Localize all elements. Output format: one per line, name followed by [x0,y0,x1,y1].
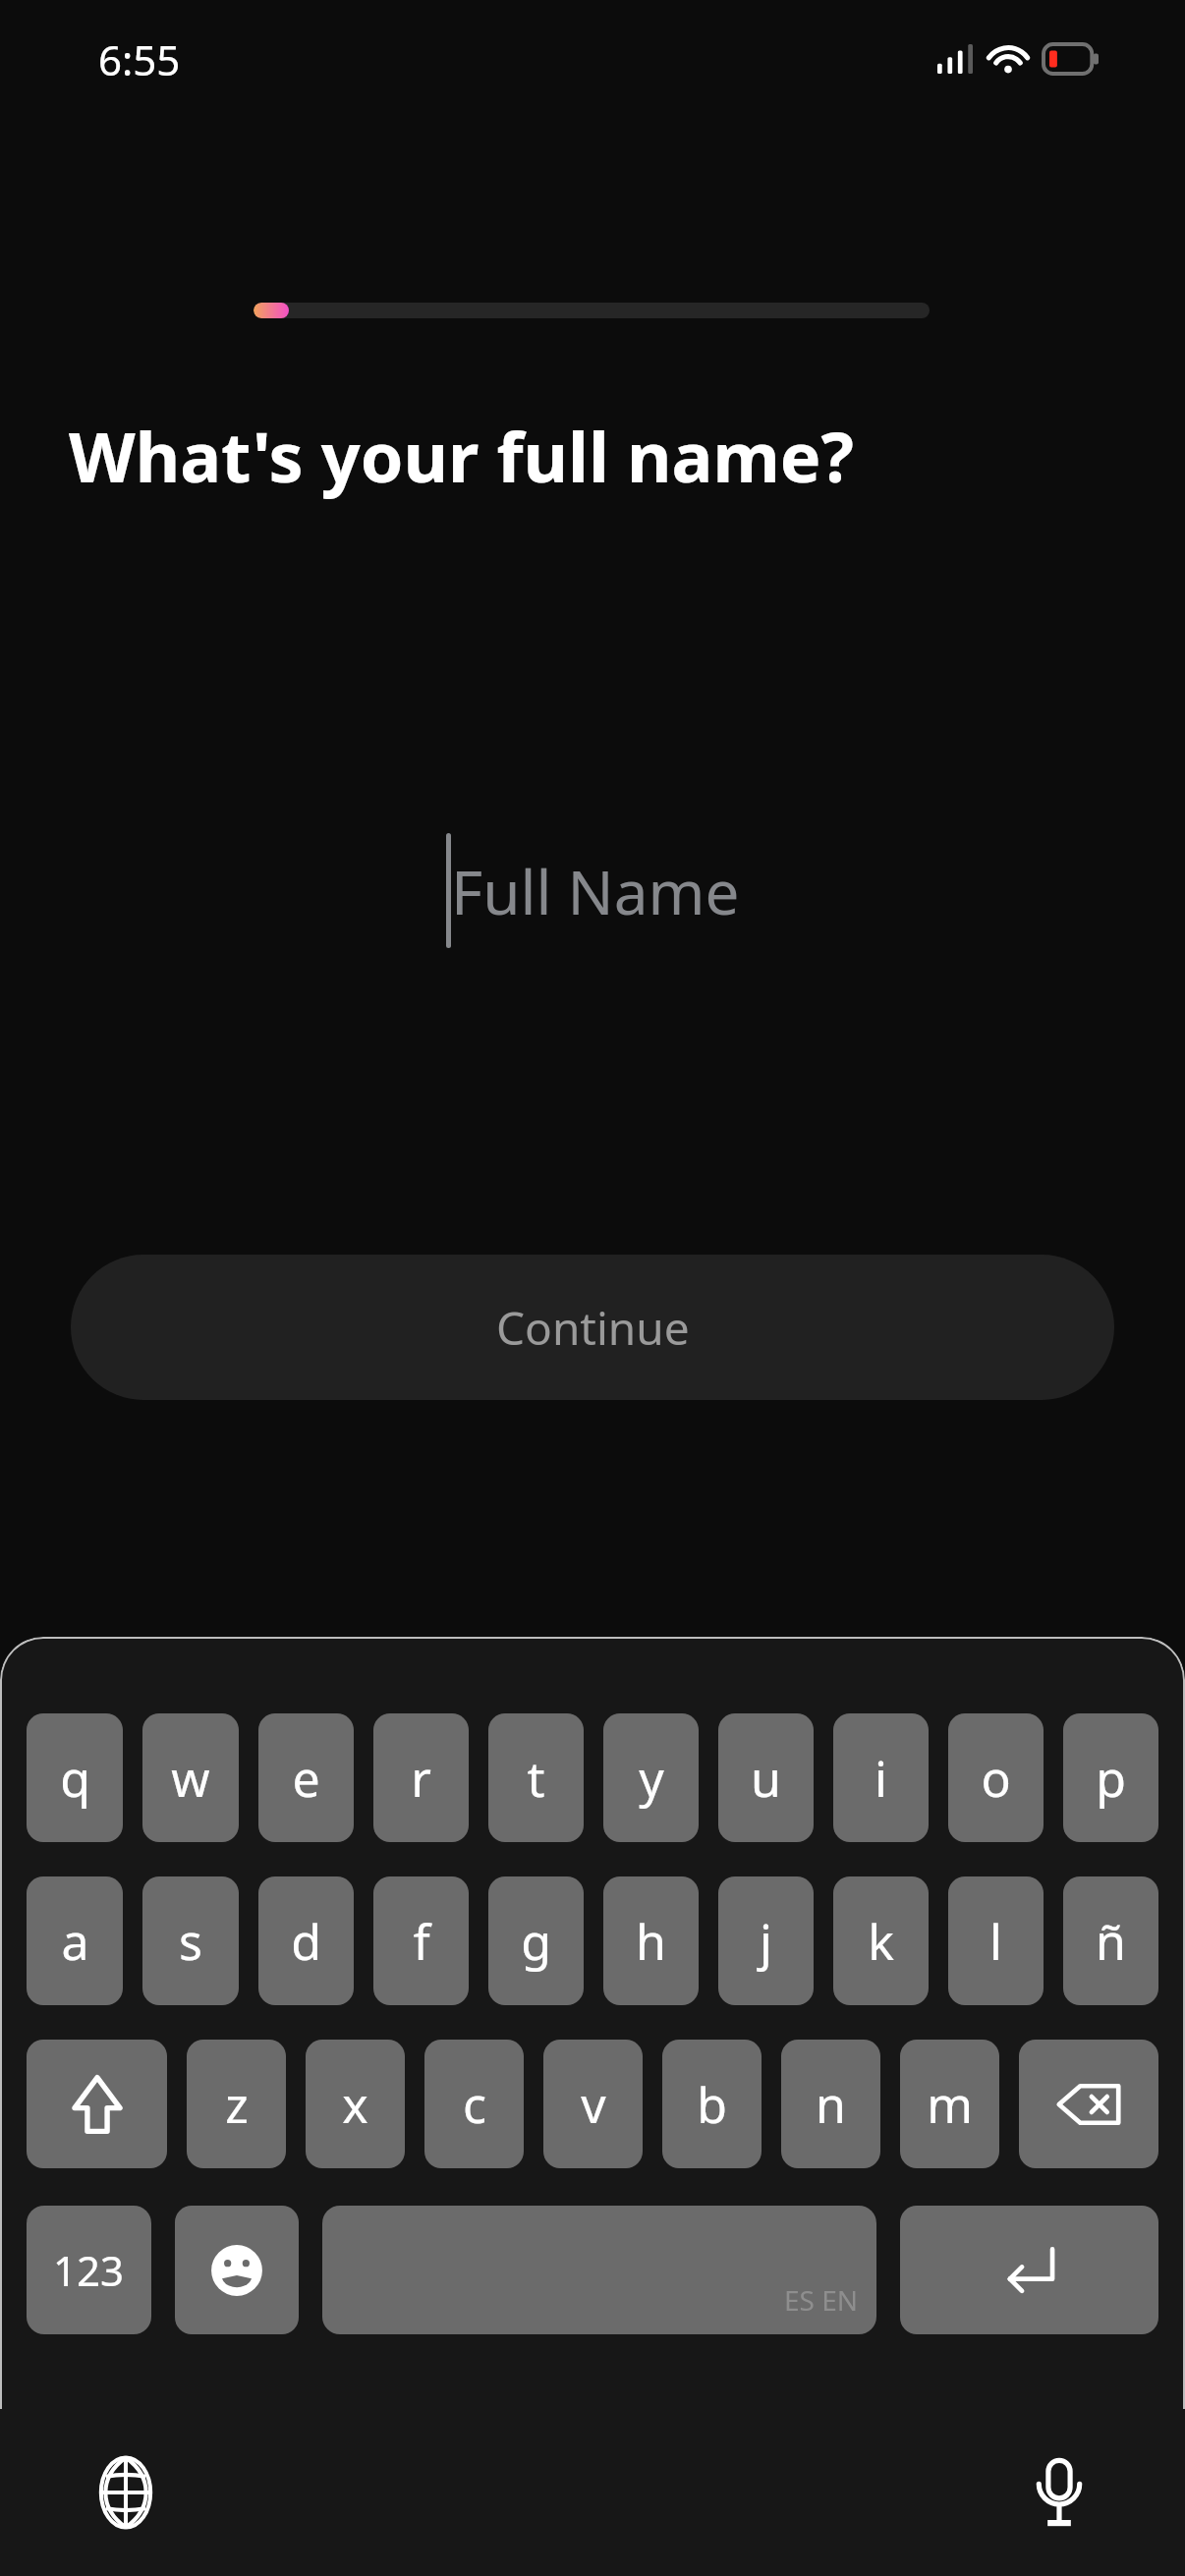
staticText: u [751,1745,781,1812]
button[interactable]: r [373,1713,469,1842]
button[interactable]: n [781,2040,880,2168]
button[interactable]: Backspace [1019,2040,1158,2168]
staticText: 6:55 [98,31,181,87]
staticText: x [342,2071,368,2138]
button[interactable]: g [488,1876,584,2005]
button[interactable]: h [603,1876,699,2005]
staticText: What's your full name? [69,409,854,502]
staticText: t [527,1745,545,1812]
button[interactable]: Emoji [175,2206,299,2334]
button[interactable]: Full Name [0,816,1185,964]
button[interactable]: e [258,1713,354,1842]
button[interactable]: z [187,2040,286,2168]
staticText: w [171,1745,210,1812]
button[interactable]: b [662,2040,762,2168]
button[interactable]: d [258,1876,354,2005]
button[interactable]: j [718,1876,814,2005]
staticText: s [179,1908,202,1975]
staticText: k [868,1908,894,1975]
staticText: b [697,2071,727,2138]
staticText: g [521,1908,551,1975]
button[interactable]: o [948,1713,1044,1842]
staticText: o [981,1745,1011,1812]
staticText: f [413,1908,430,1975]
staticText: v [581,2071,606,2138]
button[interactable]: Voice input [1004,2437,1114,2548]
button[interactable]: c [424,2040,524,2168]
button[interactable]: t [488,1713,584,1842]
button[interactable]: a [27,1876,123,2005]
button[interactable]: Change language [71,2437,181,2548]
staticText: j [760,1908,772,1975]
staticText: i [875,1745,887,1812]
button[interactable]: k [833,1876,929,2005]
staticText: y [639,1745,664,1812]
button[interactable]: f [373,1876,469,2005]
button[interactable]: m [900,2040,999,2168]
staticText: q [60,1745,90,1812]
button[interactable]: w [142,1713,239,1842]
staticText: 123 [53,2242,125,2298]
button[interactable]: l [948,1876,1044,2005]
staticText: d [291,1908,321,1975]
button[interactable]: y [603,1713,699,1842]
button[interactable]: v [543,2040,643,2168]
button[interactable]: u [718,1713,814,1842]
staticText: ñ [1096,1908,1126,1975]
staticText: n [816,2071,846,2138]
staticText: c [463,2071,486,2138]
button[interactable]: ñ [1063,1876,1158,2005]
staticText: z [225,2071,249,2138]
button[interactable]: Enter [900,2206,1158,2334]
button[interactable]: i [833,1713,929,1842]
staticText: m [927,2071,973,2138]
staticText: p [1096,1745,1126,1812]
button[interactable]: Space [322,2206,876,2334]
staticText: Continue [496,1297,690,1359]
button[interactable]: 123 [27,2206,151,2334]
button[interactable]: x [306,2040,405,2168]
button[interactable]: p [1063,1713,1158,1842]
staticText: Full Name [451,850,740,932]
button[interactable]: s [142,1876,239,2005]
button[interactable]: Continue [71,1255,1114,1400]
staticText: a [61,1908,89,1975]
staticText: e [292,1745,320,1812]
staticText: l [989,1908,1002,1975]
staticText: ES EN [784,2281,859,2319]
button[interactable]: q [27,1713,123,1842]
staticText: h [636,1908,666,1975]
button[interactable]: Shift [27,2040,167,2168]
staticText: r [411,1745,431,1812]
